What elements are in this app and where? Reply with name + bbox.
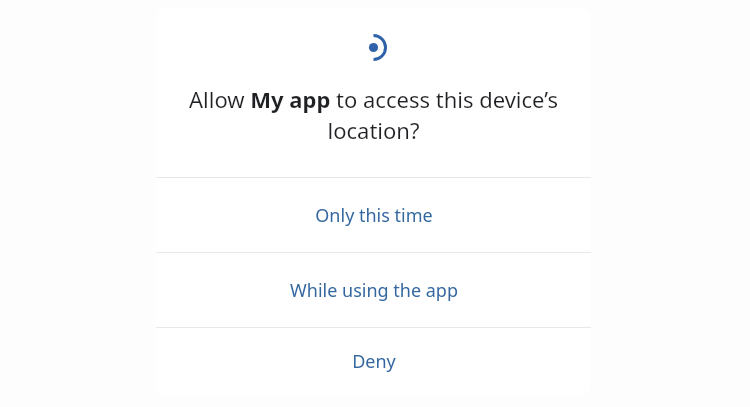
- button[interactable]: Only this time: [156, 178, 591, 252]
- staticText: While using the app: [290, 278, 458, 303]
- staticText: Allow My app to access this device’s loc…: [186, 84, 561, 146]
- staticText: Only this time: [315, 203, 433, 228]
- staticText: Deny: [352, 349, 396, 374]
- button[interactable]: While using the app: [156, 253, 591, 327]
- other: Location: [360, 34, 387, 61]
- button[interactable]: Deny: [156, 328, 591, 395]
